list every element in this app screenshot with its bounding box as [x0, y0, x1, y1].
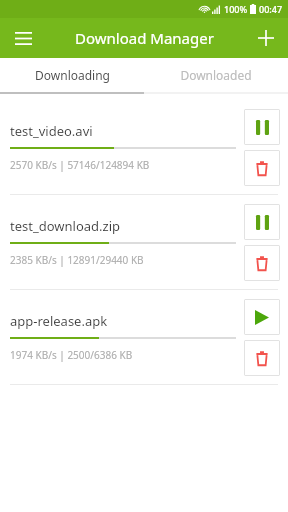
- staticText: 2385 KB/s | 12891/29440 KB: [10, 253, 144, 267]
- staticText: 00:47: [259, 3, 283, 15]
- staticText: Download Manager: [75, 28, 214, 48]
- staticText: test_download.zip: [10, 217, 121, 235]
- button[interactable]: app-release.apk: [0, 290, 288, 384]
- button[interactable]: Resume download: [244, 299, 280, 335]
- button[interactable]: Delete download: [244, 150, 280, 186]
- staticText: Downloaded: [180, 67, 252, 83]
- button[interactable]: Delete download: [244, 245, 280, 281]
- button[interactable]: Downloading: [0, 58, 144, 92]
- staticText: 100%: [224, 3, 248, 15]
- button[interactable]: Downloaded: [144, 58, 288, 92]
- button[interactable]: test_video.avi: [0, 100, 288, 194]
- button[interactable]: Pause download: [244, 109, 280, 145]
- staticText: app-release.apk: [10, 312, 108, 330]
- staticText: test_video.avi: [10, 122, 93, 140]
- staticText: Downloading: [35, 67, 110, 83]
- staticText: 2570 KB/s | 57146/124894 KB: [10, 158, 150, 172]
- button[interactable]: Add download: [249, 21, 283, 55]
- button[interactable]: Delete download: [244, 340, 280, 376]
- button[interactable]: Pause download: [244, 204, 280, 240]
- staticText: 1974 KB/s | 2500/6386 KB: [10, 348, 133, 362]
- button[interactable]: Menu: [6, 21, 40, 55]
- button[interactable]: test_download.zip: [0, 195, 288, 289]
